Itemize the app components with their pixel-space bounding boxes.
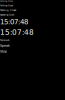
staticText: Speak [0, 44, 10, 47]
staticText: Talking Clock [0, 0, 13, 2]
staticText: Speaking Clock [0, 13, 14, 16]
staticText: Stop [0, 49, 7, 53]
staticText: Talking Clock [0, 9, 16, 11]
staticText: Speak [0, 38, 10, 42]
staticText: 15:07:48 [0, 18, 28, 26]
staticText: Talking Clock [0, 4, 13, 7]
staticText: 15:07:48 [0, 28, 34, 36]
